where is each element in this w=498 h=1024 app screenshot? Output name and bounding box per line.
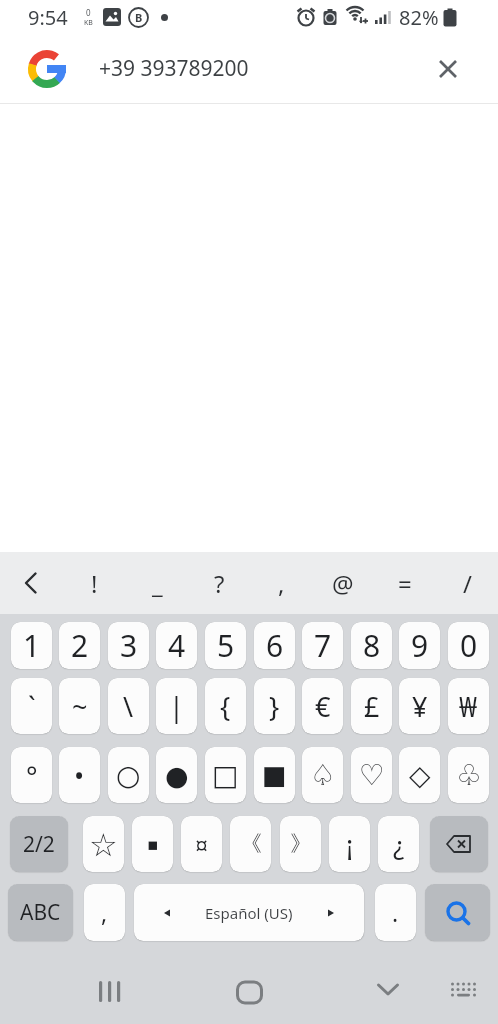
staticText: 9 [411,625,429,666]
button[interactable]: ¿ [378,816,419,872]
button[interactable]: ! [63,552,126,614]
staticText: ◇ [409,759,431,792]
button[interactable] [425,884,490,941]
button[interactable] [99,981,121,1003]
button[interactable]: / [436,552,498,614]
staticText: | [169,688,184,725]
button[interactable]: 2 [59,622,100,669]
button[interactable]: 5 [205,622,246,669]
button[interactable]: 6 [254,622,295,669]
button[interactable]: ~ [59,678,100,734]
button[interactable]: ▪ [132,816,173,872]
button[interactable]: \ [108,678,149,734]
staticText: } [269,688,280,725]
button[interactable]: , [250,552,312,614]
staticText: ¤ [195,829,209,860]
staticText: _ [152,567,163,600]
button[interactable]: □ [205,747,246,803]
staticText: ` [28,688,36,725]
staticText: £ [364,688,380,725]
button[interactable]: . [375,884,416,941]
button[interactable]: 7 [302,622,343,669]
staticText: ~ [72,688,88,725]
button[interactable]: = [374,552,436,614]
button[interactable]: 0 [448,622,489,669]
button[interactable]: 8 [351,622,392,669]
button[interactable]: 9 [399,622,440,669]
button[interactable]: ♧ [448,747,489,803]
button[interactable] [237,980,262,1005]
staticText: ● [165,760,189,791]
button[interactable]: ○ [108,747,149,803]
button[interactable]: ` [11,678,52,734]
button[interactable]: ? [188,552,250,614]
button[interactable]: { [205,678,246,734]
button[interactable]: _ [126,552,188,614]
staticText: 4 [168,625,186,666]
staticText: ○ [116,759,141,792]
staticText: ! [91,567,98,600]
button[interactable]: € [302,678,343,734]
staticText: • [74,757,85,794]
staticText: € [315,688,331,725]
button[interactable]: ♤ [302,747,343,803]
button[interactable]: 》 [280,816,321,872]
staticText: 《 [240,830,262,858]
button[interactable]: 3 [108,622,149,669]
button[interactable]: , [84,884,125,941]
button[interactable]: +39 393789200 [99,54,439,83]
button[interactable] [430,816,488,872]
button[interactable]: Español (US) [134,884,364,941]
staticText: 0 [86,7,91,18]
staticText: 6 [266,625,284,666]
staticText: ♧ [456,758,482,792]
button[interactable]: ¡ [329,816,370,872]
button[interactable] [450,982,478,998]
staticText: ° [26,757,38,794]
staticText: ¥ [412,688,428,725]
staticText: B [135,10,143,25]
staticText: ♤ [310,758,336,792]
button[interactable]: ¥ [399,678,440,734]
button[interactable]: 4 [156,622,197,669]
button[interactable]: ABC [8,884,73,941]
button[interactable]: ° [11,747,52,803]
button[interactable] [0,552,63,614]
staticText: ♡ [359,758,385,792]
button[interactable]: ■ [254,747,295,803]
button[interactable]: £ [351,678,392,734]
staticText: ■ [262,760,287,790]
button[interactable] [28,50,66,88]
button[interactable]: @ [312,552,374,614]
staticText: \ [123,688,134,725]
button[interactable]: ◇ [399,747,440,803]
button[interactable] [377,983,399,997]
button[interactable]: 1 [11,622,52,669]
button[interactable]: ¤ [181,816,222,872]
button[interactable]: 《 [230,816,271,872]
staticText: ¡ [346,826,354,863]
staticText: 0 [460,625,478,666]
button[interactable] [439,60,457,78]
staticText: 3 [120,625,138,666]
button[interactable]: ₩ [448,678,489,734]
staticText: 2 [71,625,89,666]
button[interactable]: ● [156,747,197,803]
button[interactable]: 2/2 [10,816,68,872]
staticText: / [463,567,472,600]
staticText: 9:54 [28,4,68,31]
button[interactable]: | [156,678,197,734]
staticText: . [392,897,399,928]
staticText: ABC [20,898,61,927]
staticText: 2/2 [23,830,55,859]
staticText: Español (US) [205,903,293,923]
button[interactable]: ♡ [351,747,392,803]
button[interactable]: • [59,747,100,803]
staticText: @ [332,567,354,600]
button[interactable]: } [254,678,295,734]
staticText: = [398,567,412,600]
staticText: , [101,897,108,928]
button[interactable]: ☆ [83,816,124,872]
staticText: 5 [217,625,235,666]
staticText: □ [212,759,239,792]
